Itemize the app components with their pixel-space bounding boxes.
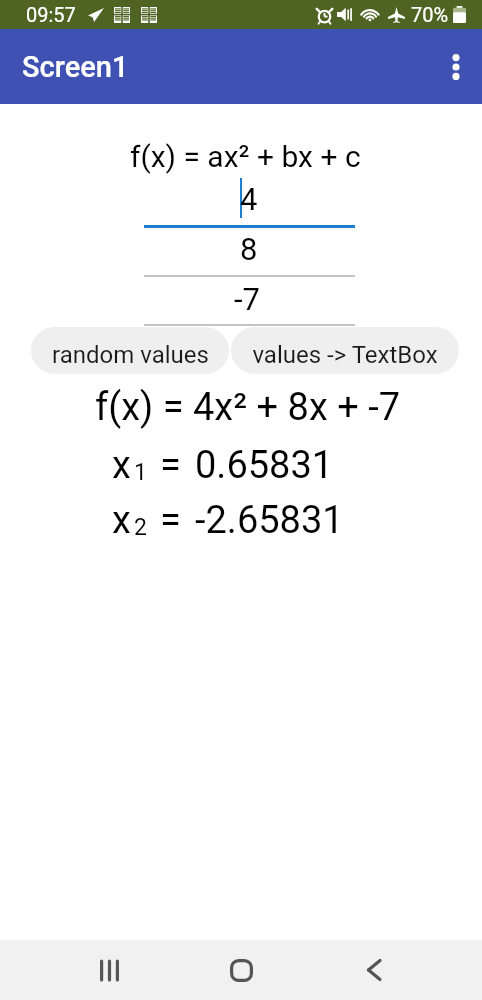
staticText: f(x) = ax² + bx + c — [130, 139, 361, 174]
staticText: 2 — [134, 514, 147, 541]
staticText: 0.65831 — [195, 443, 334, 488]
button[interactable]: Recent apps — [85, 946, 133, 994]
staticText: 4 — [240, 181, 258, 217]
staticText: 70% — [411, 3, 449, 26]
button[interactable]: More options — [432, 43, 480, 91]
button[interactable]: Home — [217, 946, 265, 994]
staticText: random values — [52, 341, 209, 369]
staticText: 1 — [134, 459, 147, 486]
button[interactable]: random values — [31, 327, 229, 374]
staticText: Screen1 — [22, 50, 129, 84]
staticText: = — [160, 498, 181, 543]
staticText: x — [112, 498, 131, 543]
button[interactable] — [144, 274, 355, 319]
button[interactable] — [144, 224, 355, 269]
staticText: -7 — [234, 281, 260, 317]
staticText: = — [160, 443, 181, 488]
staticText: 09:57 — [26, 3, 76, 26]
staticText: 8 — [240, 231, 258, 267]
staticText: f(x) = 4x² + 8x + -7 — [95, 385, 401, 430]
staticText: x — [112, 443, 131, 488]
staticText: -2.65831 — [195, 498, 344, 543]
staticText: values -> TextBox — [252, 341, 438, 369]
button[interactable] — [144, 174, 355, 219]
button[interactable]: Back — [350, 946, 398, 994]
button[interactable]: values -> TextBox — [231, 327, 459, 374]
